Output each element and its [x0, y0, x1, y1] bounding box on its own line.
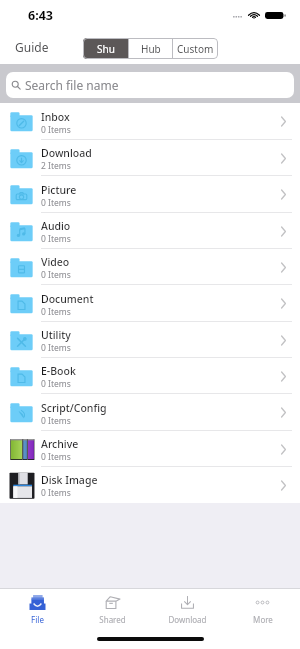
- button[interactable]: Utility: [0, 322, 300, 358]
- button[interactable]: Audio: [0, 213, 300, 249]
- button[interactable]: Shu: [83, 38, 128, 59]
- staticText: 2 Items: [41, 160, 71, 172]
- button[interactable]: Archive: [0, 431, 300, 467]
- button[interactable]: Document: [0, 285, 300, 322]
- staticText: Audio: [41, 219, 71, 233]
- staticText: Hub: [141, 42, 161, 56]
- staticText: Download: [168, 614, 207, 625]
- staticText: Inbox: [41, 110, 70, 124]
- button[interactable]: Search file name: [6, 72, 294, 98]
- staticText: 0 Items: [41, 306, 71, 318]
- staticText: File: [31, 614, 44, 625]
- staticText: 6:43: [28, 7, 53, 24]
- button[interactable]: Shared: [75, 589, 150, 633]
- staticText: Download: [41, 146, 92, 160]
- staticText: 0 Items: [41, 415, 71, 427]
- button[interactable]: Custom: [173, 38, 218, 59]
- staticText: 0 Items: [41, 451, 71, 463]
- staticText: 0 Items: [41, 487, 71, 499]
- staticText: Script/Config: [41, 401, 107, 415]
- button[interactable]: Hub: [129, 38, 172, 59]
- button[interactable]: Script/Config: [0, 394, 300, 431]
- staticText: 0 Items: [41, 378, 71, 390]
- button[interactable]: E-Book: [0, 358, 300, 394]
- staticText: 0 Items: [41, 269, 71, 281]
- staticText: E-Book: [41, 364, 76, 378]
- staticText: Shared: [99, 614, 126, 625]
- staticText: 0 Items: [41, 124, 71, 136]
- staticText: Document: [41, 292, 94, 306]
- staticText: 0 Items: [41, 233, 71, 245]
- button[interactable]: Download: [150, 589, 225, 633]
- staticText: Utility: [41, 328, 71, 342]
- button[interactable]: Picture: [0, 176, 300, 213]
- staticText: 0 Items: [41, 342, 71, 354]
- staticText: Shu: [97, 42, 115, 56]
- button[interactable]: Inbox: [0, 103, 300, 140]
- button[interactable]: Video: [0, 249, 300, 285]
- button[interactable]: Disk Image: [0, 467, 300, 503]
- staticText: Disk Image: [41, 473, 98, 487]
- staticText: Picture: [41, 183, 77, 197]
- button[interactable]: File: [0, 589, 75, 633]
- staticText: Search file name: [25, 77, 119, 93]
- staticText: 0 Items: [41, 197, 71, 209]
- staticText: Guide: [15, 39, 49, 55]
- staticText: Video: [41, 255, 70, 269]
- staticText: Archive: [41, 437, 79, 451]
- staticText: More: [253, 614, 273, 625]
- staticText: Custom: [177, 42, 214, 56]
- button[interactable]: Download: [0, 140, 300, 176]
- button[interactable]: More: [225, 589, 300, 633]
